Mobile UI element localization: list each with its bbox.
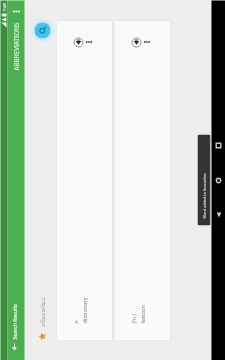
staticText: Search Results [11,303,18,339]
button[interactable]: n. [56,20,112,340]
staticText: ABBREVIATIONS [11,22,20,70]
button[interactable]: Home [211,170,225,190]
staticText: dictionary [80,296,88,323]
button[interactable]: Pronounce [73,37,83,47]
button[interactable]: Search [34,22,50,38]
button[interactable]: Pronounce [131,37,141,47]
button[interactable]: Back [5,338,22,356]
staticText: ශබ්දකෝෂය [39,297,45,327]
button[interactable]: More options [142,37,151,46]
staticText: n. [72,318,79,323]
button[interactable]: Favourite [34,329,49,344]
staticText: (fn.) [130,313,137,323]
button[interactable]: More options [84,37,93,46]
button[interactable]: ABBREVIATIONS [8,19,23,73]
button[interactable]: Recent apps [211,135,225,155]
staticText: lexicon [138,304,146,323]
button[interactable]: (fn.) [114,20,170,340]
staticText: Word added to favourites [201,172,206,218]
button[interactable]: Back [211,205,225,225]
staticText: 7:45 [1,2,7,11]
button[interactable]: More options [7,3,24,20]
